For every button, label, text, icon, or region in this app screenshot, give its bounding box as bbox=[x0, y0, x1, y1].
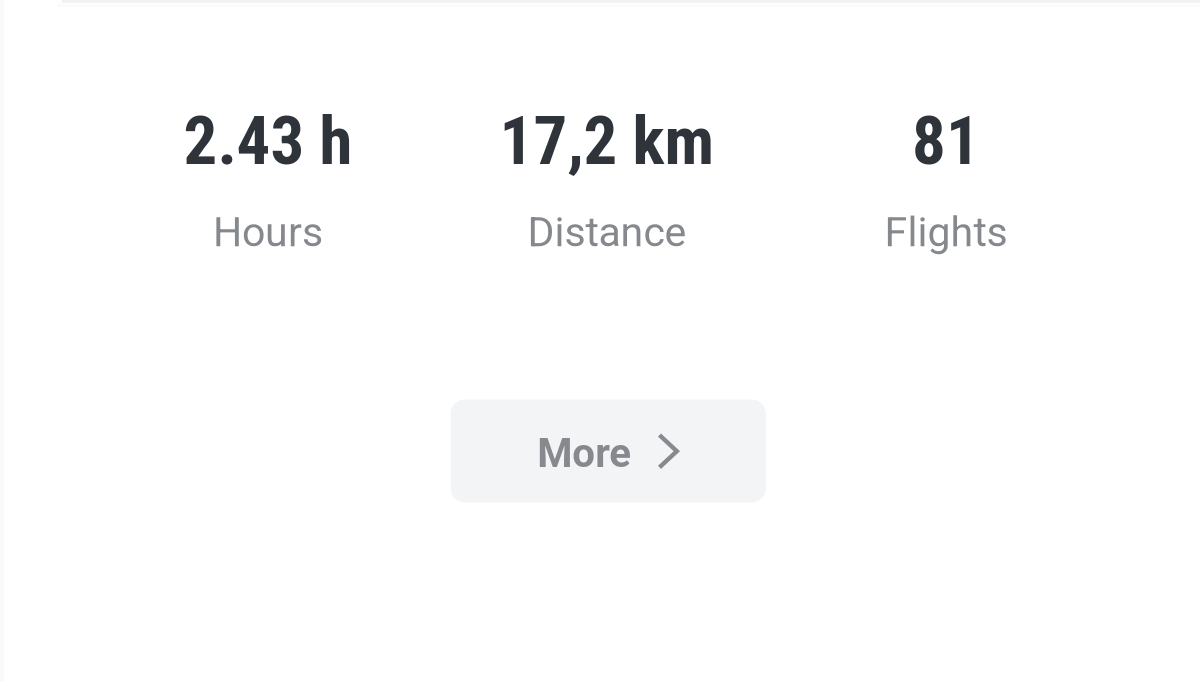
staticText: 81 bbox=[912, 102, 980, 180]
staticText: 17,2 km bbox=[499, 102, 714, 180]
staticText: Hours bbox=[213, 208, 323, 256]
staticText: More bbox=[537, 430, 631, 477]
staticText: 2.43 h bbox=[183, 102, 352, 180]
staticText: Distance bbox=[527, 208, 686, 256]
staticText: Flights bbox=[884, 208, 1007, 256]
button[interactable]: More bbox=[451, 399, 766, 502]
